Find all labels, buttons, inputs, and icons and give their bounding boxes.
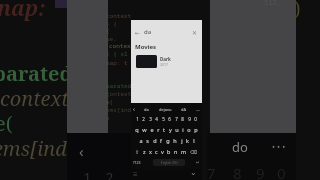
- staticText: e(: [106, 98, 114, 106]
- staticText: 8: [233, 163, 242, 180]
- staticText: ue,: [106, 35, 117, 43]
- staticText: y: [169, 126, 172, 133]
- staticText: context: [109, 42, 135, 50]
- staticText: do: [232, 138, 248, 156]
- staticText: parated(: [0, 60, 81, 87]
- staticText: w: [142, 126, 147, 133]
- staticText: 0: [194, 116, 197, 122]
- staticText: x: [149, 148, 152, 155]
- staticText: 7: [207, 163, 216, 180]
- staticText: 1: [83, 167, 92, 180]
- staticText: ⌄: [190, 168, 197, 177]
- staticText: 2: [142, 116, 145, 122]
- staticText: g: [166, 137, 170, 144]
- staticText: n: [174, 148, 178, 155]
- staticText: da: [144, 107, 149, 112]
- staticText: 9: [256, 163, 265, 180]
- staticText: v: [161, 148, 164, 155]
- staticText: nap: t: [106, 59, 128, 67]
- staticText: ber: (c: [106, 131, 132, 139]
- staticText: p: [194, 126, 198, 133]
- staticText: ‹: [79, 141, 84, 161]
- staticText: nap:: [0, 0, 46, 23]
- button[interactable]: ←: [135, 26, 198, 38]
- staticText: 0: [277, 163, 286, 180]
- staticText: ⌫: [190, 149, 198, 155]
- staticText: 3: [149, 116, 152, 122]
- staticText: a: [139, 137, 143, 144]
- staticText: ⇧: [135, 149, 140, 155]
- button[interactable]: Dark: [136, 55, 197, 68]
- staticText: • • •: [272, 141, 286, 152]
- staticText: r: [157, 126, 160, 133]
- staticText: context: [0, 85, 69, 112]
- staticText: f: [160, 137, 162, 144]
- staticText: e: [150, 126, 154, 133]
- staticText: English (US): [161, 161, 178, 165]
- staticText: 9: [188, 116, 191, 122]
- staticText: ems[inde: [106, 106, 132, 122]
- staticText: context) {: [106, 12, 132, 28]
- staticText: ←: [135, 29, 141, 36]
- staticText: m: [181, 148, 187, 155]
- staticText: {: [106, 27, 110, 35]
- staticText: k: [186, 137, 189, 144]
- staticText: dA: [181, 107, 187, 112]
- staticText: 5: [162, 116, 165, 122]
- staticText: Dark: [160, 56, 171, 62]
- staticText: c: [155, 148, 158, 155]
- staticText: da: [144, 28, 152, 36]
- staticText: 4: [155, 116, 158, 122]
- staticText: s: [146, 137, 149, 144]
- staticText: i: [182, 126, 184, 133]
- staticText: Movies: [135, 43, 157, 51]
- staticText: dejavu: [159, 107, 172, 112]
- staticText: l: [193, 137, 195, 144]
- staticText: ) { sl: [106, 50, 128, 58]
- staticText: q: [135, 126, 139, 133]
- staticText: j: [181, 137, 183, 144]
- staticText: 2: [105, 167, 114, 180]
- staticText: ?123: [133, 160, 141, 165]
- staticText: u: [175, 126, 179, 133]
- staticText: ems[inde: [0, 135, 77, 162]
- staticText: b: [167, 148, 171, 155]
- staticText: d: [153, 137, 157, 144]
- staticText: —: [196, 107, 200, 112]
- staticText: z: [143, 148, 146, 155]
- staticText: o: [187, 126, 191, 133]
- staticText: context: [106, 90, 132, 98]
- staticText: 2017: [160, 62, 169, 67]
- staticText: 1: [136, 116, 139, 122]
- staticText: 7: [175, 116, 178, 122]
- staticText: ): [294, 0, 301, 22]
- staticText: ☰: [133, 171, 138, 177]
- staticText: t: [163, 126, 165, 133]
- staticText: ↵: [196, 160, 200, 165]
- staticText: e(: [0, 110, 13, 137]
- staticText: 512.: [264, 0, 281, 8]
- staticText: 8: [181, 116, 184, 122]
- staticText: ✕: [192, 29, 198, 36]
- staticText: parated(: [106, 82, 132, 98]
- staticText: h: [173, 137, 177, 144]
- staticText: 6: [168, 116, 171, 122]
- staticText: ‹: [133, 105, 135, 113]
